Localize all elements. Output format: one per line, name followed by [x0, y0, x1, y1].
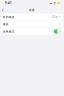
staticText: 自动锁定	[3, 15, 15, 19]
button[interactable]: 墙纸	[1, 21, 63, 28]
button[interactable]: 自动锁定	[1, 13, 63, 20]
staticText: 9:41	[5, 1, 12, 5]
staticText: 深色模式	[3, 30, 15, 33]
button[interactable]: 深色模式	[1, 28, 63, 35]
staticText: 30秒	[51, 15, 58, 19]
staticText: 墙纸	[3, 23, 9, 26]
staticText: 设置	[29, 8, 35, 12]
button[interactable]: Back	[1, 7, 5, 13]
